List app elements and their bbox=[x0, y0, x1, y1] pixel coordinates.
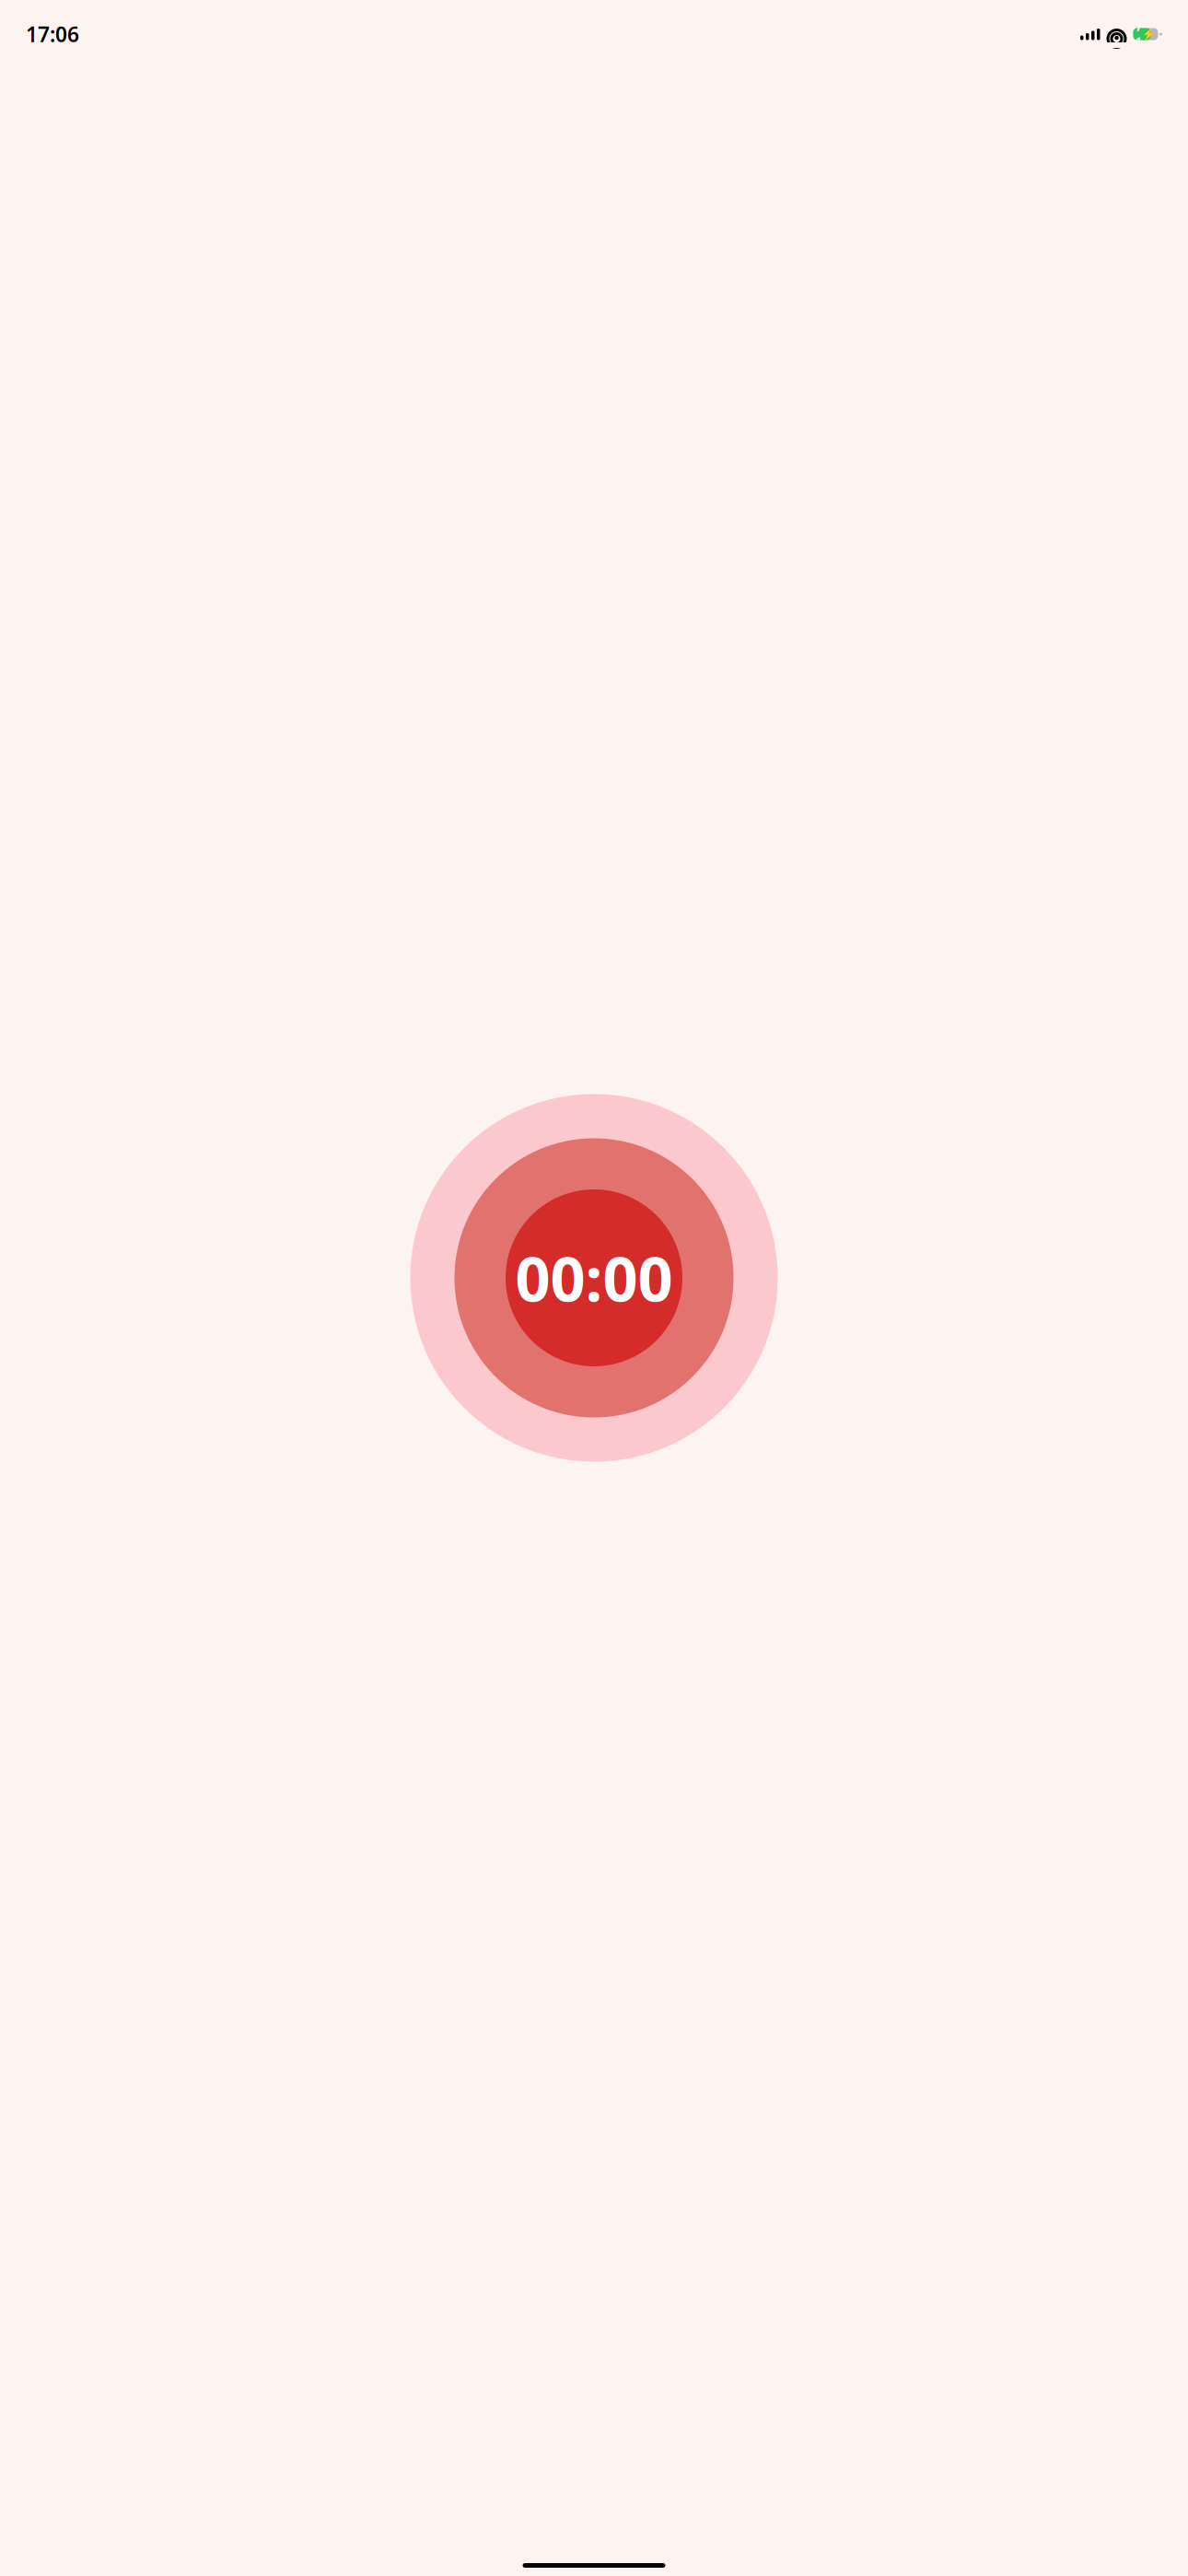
staticText: 00:00 bbox=[515, 1237, 673, 1319]
button[interactable]: Start timer bbox=[410, 1094, 778, 1462]
staticText: 71 bbox=[1136, 19, 1142, 49]
staticText: ⚡ bbox=[1142, 28, 1156, 40]
staticText: 17:06 bbox=[26, 20, 79, 48]
